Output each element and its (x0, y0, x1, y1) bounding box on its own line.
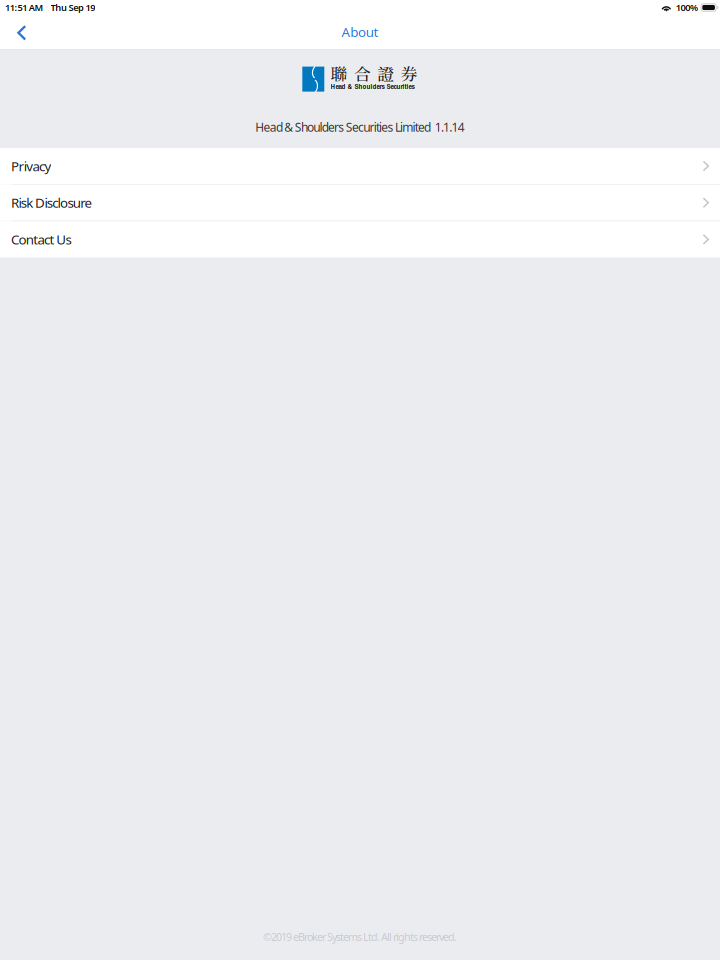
staticText: Head & Shoulders Securities Limited 1.1.… (255, 119, 465, 135)
button[interactable]: Contact Us (0, 221, 720, 257)
staticText: Head & Shoulders Securities (330, 81, 414, 91)
staticText: 聯 (330, 61, 347, 85)
button[interactable]: Privacy (0, 148, 720, 184)
staticText: About (341, 23, 379, 41)
staticText: Risk Disclosure (11, 194, 93, 211)
staticText: 證 (377, 61, 394, 85)
staticText: 11:51 AM (5, 1, 44, 14)
staticText: Thu Sep 19 (51, 1, 95, 14)
staticText: 100% (676, 1, 698, 14)
staticText: Privacy (11, 157, 51, 175)
staticText: 券 (401, 61, 418, 85)
button[interactable]: Risk Disclosure (0, 185, 720, 221)
staticText: 合 (354, 61, 371, 85)
staticText: Contact Us (11, 230, 72, 248)
button[interactable]: Back (0, 20, 41, 50)
staticText: ©2019 eBroker Systems Ltd. All rights re… (263, 930, 457, 944)
